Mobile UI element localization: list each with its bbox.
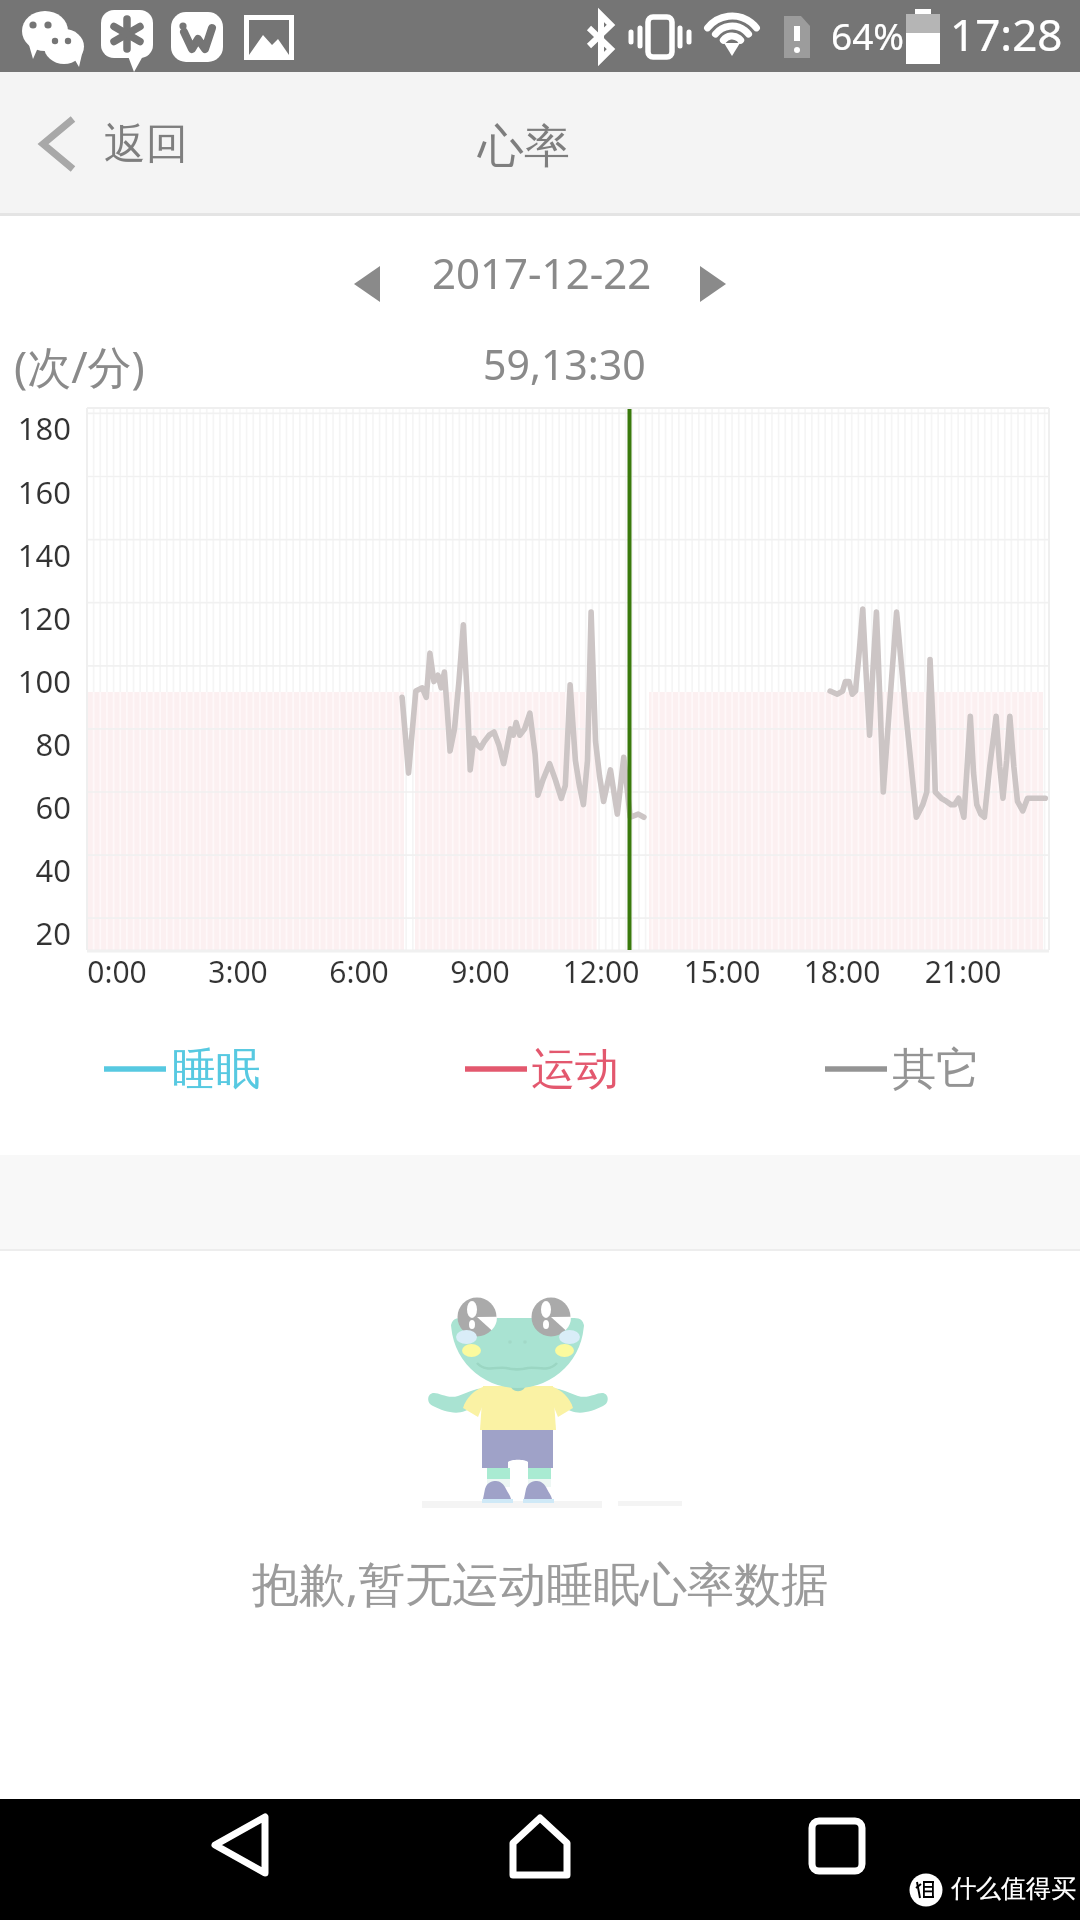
button[interactable]: Next day	[676, 243, 750, 325]
staticText: 160	[0, 471, 71, 513]
staticText: 120	[0, 597, 71, 639]
staticText: 心率	[478, 118, 570, 176]
button[interactable]: 睡眠	[96, 1040, 260, 1098]
staticText: 100	[0, 660, 71, 702]
staticText: 64%	[831, 10, 905, 60]
staticText: 0:00	[47, 951, 187, 992]
staticText: 180	[0, 407, 71, 449]
staticText: 40	[0, 849, 71, 891]
staticText: 20	[0, 912, 71, 954]
staticText: 睡眠	[172, 1042, 260, 1097]
staticText: 3:00	[168, 951, 308, 992]
button[interactable]: Back	[147, 1799, 347, 1920]
staticText: 15:00	[652, 951, 792, 992]
staticText: 其它	[892, 1042, 980, 1097]
button[interactable]: 其它	[817, 1040, 980, 1098]
staticText: 59,13:30	[483, 336, 646, 392]
staticText: 140	[0, 534, 71, 576]
staticText: 抱歉,暂无运动睡眠心率数据	[0, 1551, 1080, 1615]
button[interactable]: Previous day	[330, 243, 404, 325]
button[interactable]: 返回	[20, 94, 212, 194]
button[interactable]: 运动	[457, 1040, 619, 1098]
staticText: 80	[0, 723, 71, 765]
staticText: 什么值得买	[951, 1873, 1076, 1904]
staticText: 17:28	[950, 4, 1063, 64]
staticText: 60	[0, 786, 71, 828]
staticText: 21:00	[893, 951, 1033, 992]
staticText: 2017-12-22	[432, 244, 652, 301]
staticText: 12:00	[531, 951, 671, 992]
staticText: 18:00	[772, 951, 912, 992]
staticText: 9:00	[410, 951, 550, 992]
button[interactable]: Home	[440, 1799, 640, 1920]
staticText: 运动	[531, 1042, 619, 1097]
staticText: (次/分)	[14, 336, 145, 396]
staticText: 返回	[104, 118, 188, 171]
staticText: 6:00	[289, 951, 429, 992]
button[interactable]: Recents	[736, 1799, 936, 1920]
